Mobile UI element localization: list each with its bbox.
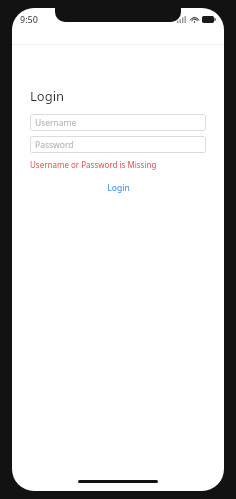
staticText: Login — [30, 87, 65, 105]
staticText: Username — [35, 117, 77, 129]
staticText: Password — [35, 139, 74, 151]
staticText: Login — [107, 182, 130, 194]
button[interactable]: Login — [30, 180, 206, 196]
button[interactable]: Username — [30, 114, 206, 131]
button[interactable]: Password — [30, 136, 206, 153]
staticText: 9:50 — [20, 13, 38, 25]
staticText: Username or Password is Missing — [30, 159, 157, 170]
